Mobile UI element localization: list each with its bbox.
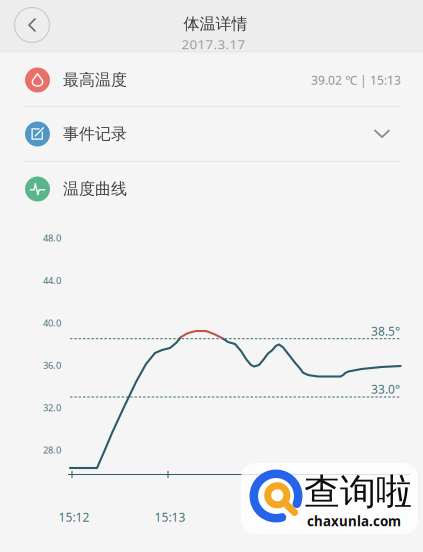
staticText: chaxunla.com bbox=[307, 512, 401, 530]
button[interactable]: 最高温度 bbox=[0, 54, 423, 106]
staticText: 32.0 bbox=[43, 401, 61, 414]
staticText: 40.0 bbox=[43, 317, 61, 329]
staticText: 38.5° bbox=[371, 323, 400, 339]
staticText: 39.02 ℃ | 15:13 bbox=[311, 72, 401, 88]
staticText: 28.0 bbox=[43, 444, 61, 456]
staticText: 温度曲线 bbox=[63, 179, 127, 199]
staticText: 最高温度 bbox=[63, 70, 127, 90]
staticText: 36.0 bbox=[43, 359, 61, 371]
staticText: 查询啦 bbox=[304, 470, 412, 514]
staticText: 2017.3.17 bbox=[181, 35, 245, 53]
staticText: 15:12 bbox=[58, 509, 89, 525]
staticText: 48.0 bbox=[43, 232, 61, 244]
staticText: 33.0° bbox=[371, 381, 400, 397]
staticText: 体温详情 bbox=[183, 14, 247, 34]
staticText: 事件记录 bbox=[63, 124, 127, 144]
staticText: 44.0 bbox=[43, 274, 61, 287]
button[interactable]: Back bbox=[10, 3, 54, 47]
button[interactable]: 事件记录 bbox=[0, 107, 423, 161]
staticText: 15:13 bbox=[154, 509, 185, 525]
